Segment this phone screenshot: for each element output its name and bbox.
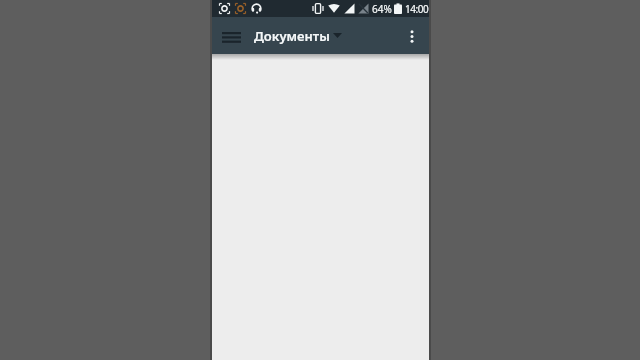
button[interactable]: Документы	[254, 17, 346, 54]
staticText: 64%	[372, 2, 392, 16]
staticText: 14:00	[405, 2, 429, 16]
staticText: Документы	[254, 27, 330, 45]
button[interactable]	[216, 26, 246, 48]
button[interactable]	[402, 21, 422, 51]
